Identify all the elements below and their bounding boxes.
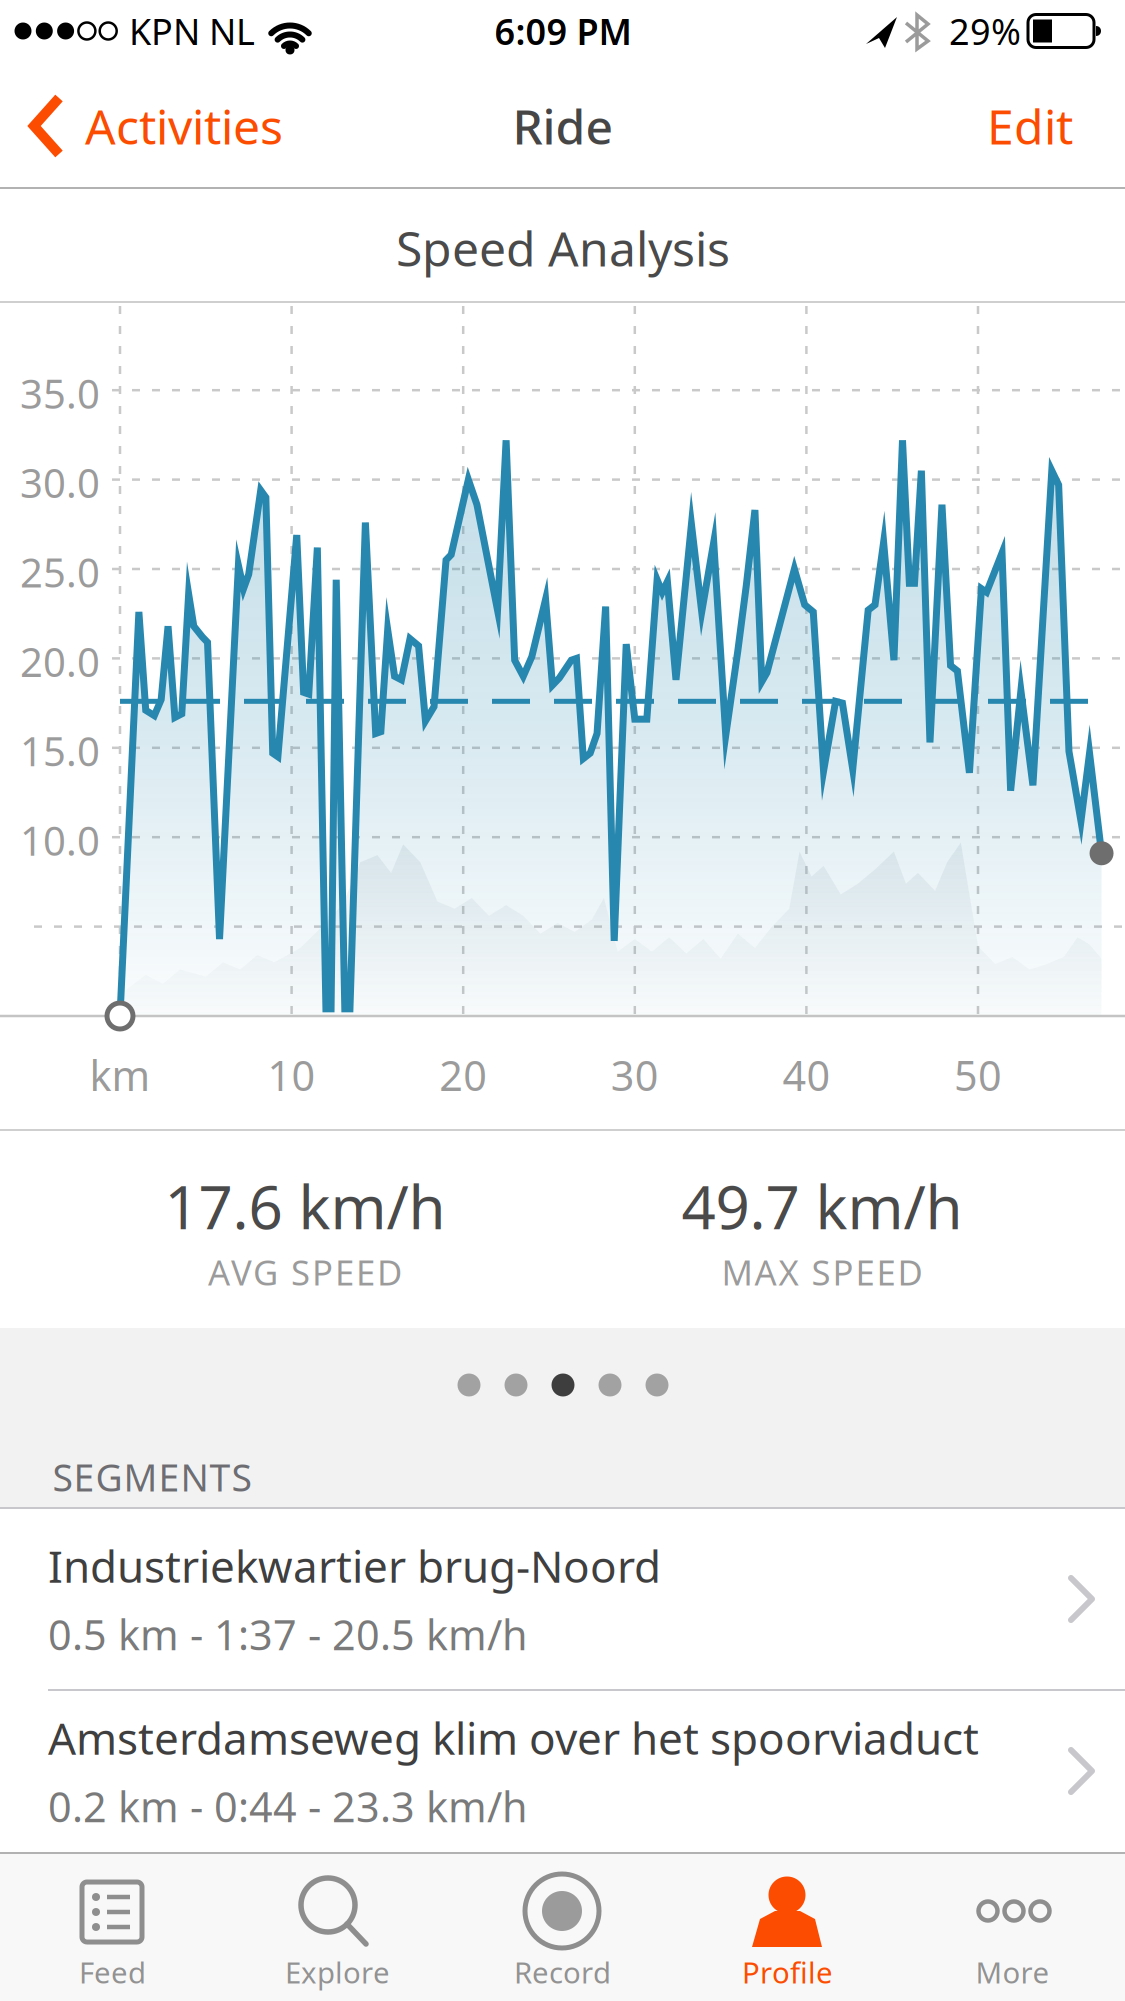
button[interactable]: Edit	[987, 94, 1073, 158]
staticText: MAX SPEED	[721, 1249, 922, 1295]
button[interactable]	[645, 1373, 668, 1396]
staticText: 6:09 PM	[494, 7, 631, 55]
staticText: SEGMENTS	[52, 1452, 251, 1502]
staticText: More	[975, 1952, 1049, 1991]
button[interactable]: Explore	[225, 1853, 450, 2001]
staticText: km	[89, 1048, 150, 1102]
staticText: 17.6 km/h	[164, 1166, 445, 1246]
button[interactable]: Industriekwartier brug-Noord	[0, 1509, 1125, 1689]
staticText: 29%	[949, 7, 1021, 55]
staticText: 35.0	[20, 367, 100, 420]
staticText: 10.0	[20, 814, 100, 867]
staticText: 30.0	[20, 456, 100, 509]
button[interactable]	[504, 1373, 527, 1396]
staticText: 49.7 km/h	[681, 1166, 962, 1246]
staticText: 0.5 km - 1:37 - 20.5 km/h	[48, 1607, 528, 1662]
staticText: 20.0	[20, 635, 100, 688]
button[interactable]	[598, 1373, 621, 1396]
staticText: Ride	[512, 94, 613, 158]
staticText: Record	[514, 1952, 611, 1991]
staticText: AVG SPEED	[208, 1249, 402, 1295]
staticText: Industriekwartier brug-Noord	[48, 1536, 661, 1595]
staticText: Edit	[987, 94, 1073, 158]
staticText: 10	[268, 1048, 316, 1102]
staticText: Profile	[742, 1952, 833, 1991]
staticText: 20	[439, 1048, 487, 1102]
staticText: 40	[782, 1048, 830, 1102]
staticText: 0.2 km - 0:44 - 23.3 km/h	[48, 1779, 528, 1834]
button[interactable]: Activities	[0, 61, 400, 191]
button[interactable]: Record	[450, 1853, 675, 2001]
button[interactable]: Profile	[675, 1853, 900, 2001]
staticText: Activities	[85, 94, 283, 158]
button[interactable]: Feed	[0, 1853, 225, 2001]
button[interactable]: More	[900, 1853, 1125, 2001]
button[interactable]	[551, 1373, 574, 1396]
staticText: 50	[954, 1048, 1002, 1102]
staticText: 30	[611, 1048, 659, 1102]
button[interactable]	[457, 1373, 480, 1396]
staticText: 25.0	[20, 545, 100, 598]
staticText: Feed	[79, 1952, 146, 1991]
button[interactable]: Amsterdamseweg klim over het spoorviaduc…	[0, 1681, 1125, 1861]
staticText: Amsterdamseweg klim over het spoorviaduc…	[48, 1708, 979, 1767]
staticText: 15.0	[20, 724, 100, 777]
staticText: KPN NL	[129, 7, 255, 55]
staticText: Speed Analysis	[396, 216, 730, 280]
staticText: Explore	[285, 1952, 390, 1991]
